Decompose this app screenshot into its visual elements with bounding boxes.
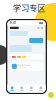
button[interactable]: Tab [26,85,36,93]
staticText: 9:41 [10,21,16,25]
staticText: 学习专区 [13,1,45,14]
button[interactable]: Tab [36,85,46,93]
button[interactable]: Tab [17,85,26,93]
staticText: ▮▮ [39,21,43,24]
button[interactable]: Tab [7,85,17,93]
